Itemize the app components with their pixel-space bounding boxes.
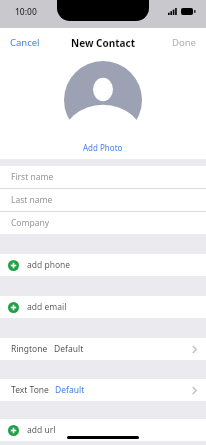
staticText: Add Photo: [83, 142, 123, 153]
staticText: Company: [11, 217, 50, 229]
staticText: Cancel: [10, 36, 40, 49]
button[interactable]: Done: [162, 28, 206, 57]
button[interactable]: Last name: [0, 189, 206, 212]
staticText: add phone: [27, 259, 71, 271]
button[interactable]: add email: [0, 296, 206, 318]
staticText: Ringtone: [11, 343, 48, 355]
staticText: Default: [55, 384, 85, 396]
button[interactable]: Add Photo: [77, 141, 129, 154]
staticText: add url: [27, 424, 56, 436]
staticText: Text Tone: [11, 384, 49, 396]
staticText: New Contact: [71, 36, 136, 50]
button[interactable]: First name: [0, 166, 206, 189]
button[interactable]: Company: [0, 212, 206, 234]
button[interactable]: add phone: [0, 254, 206, 276]
staticText: 10:00: [15, 6, 37, 18]
button[interactable]: Cancel: [0, 28, 50, 57]
button[interactable]: add url: [0, 419, 206, 441]
button[interactable]: Add Photo: [64, 61, 142, 139]
staticText: Last name: [11, 194, 53, 206]
staticText: First name: [11, 171, 54, 183]
staticText: add email: [27, 301, 67, 313]
staticText: Done: [172, 36, 196, 49]
staticText: Default: [54, 343, 84, 355]
button[interactable]: Ringtone: [0, 338, 206, 360]
button[interactable]: Text Tone: [0, 379, 206, 401]
